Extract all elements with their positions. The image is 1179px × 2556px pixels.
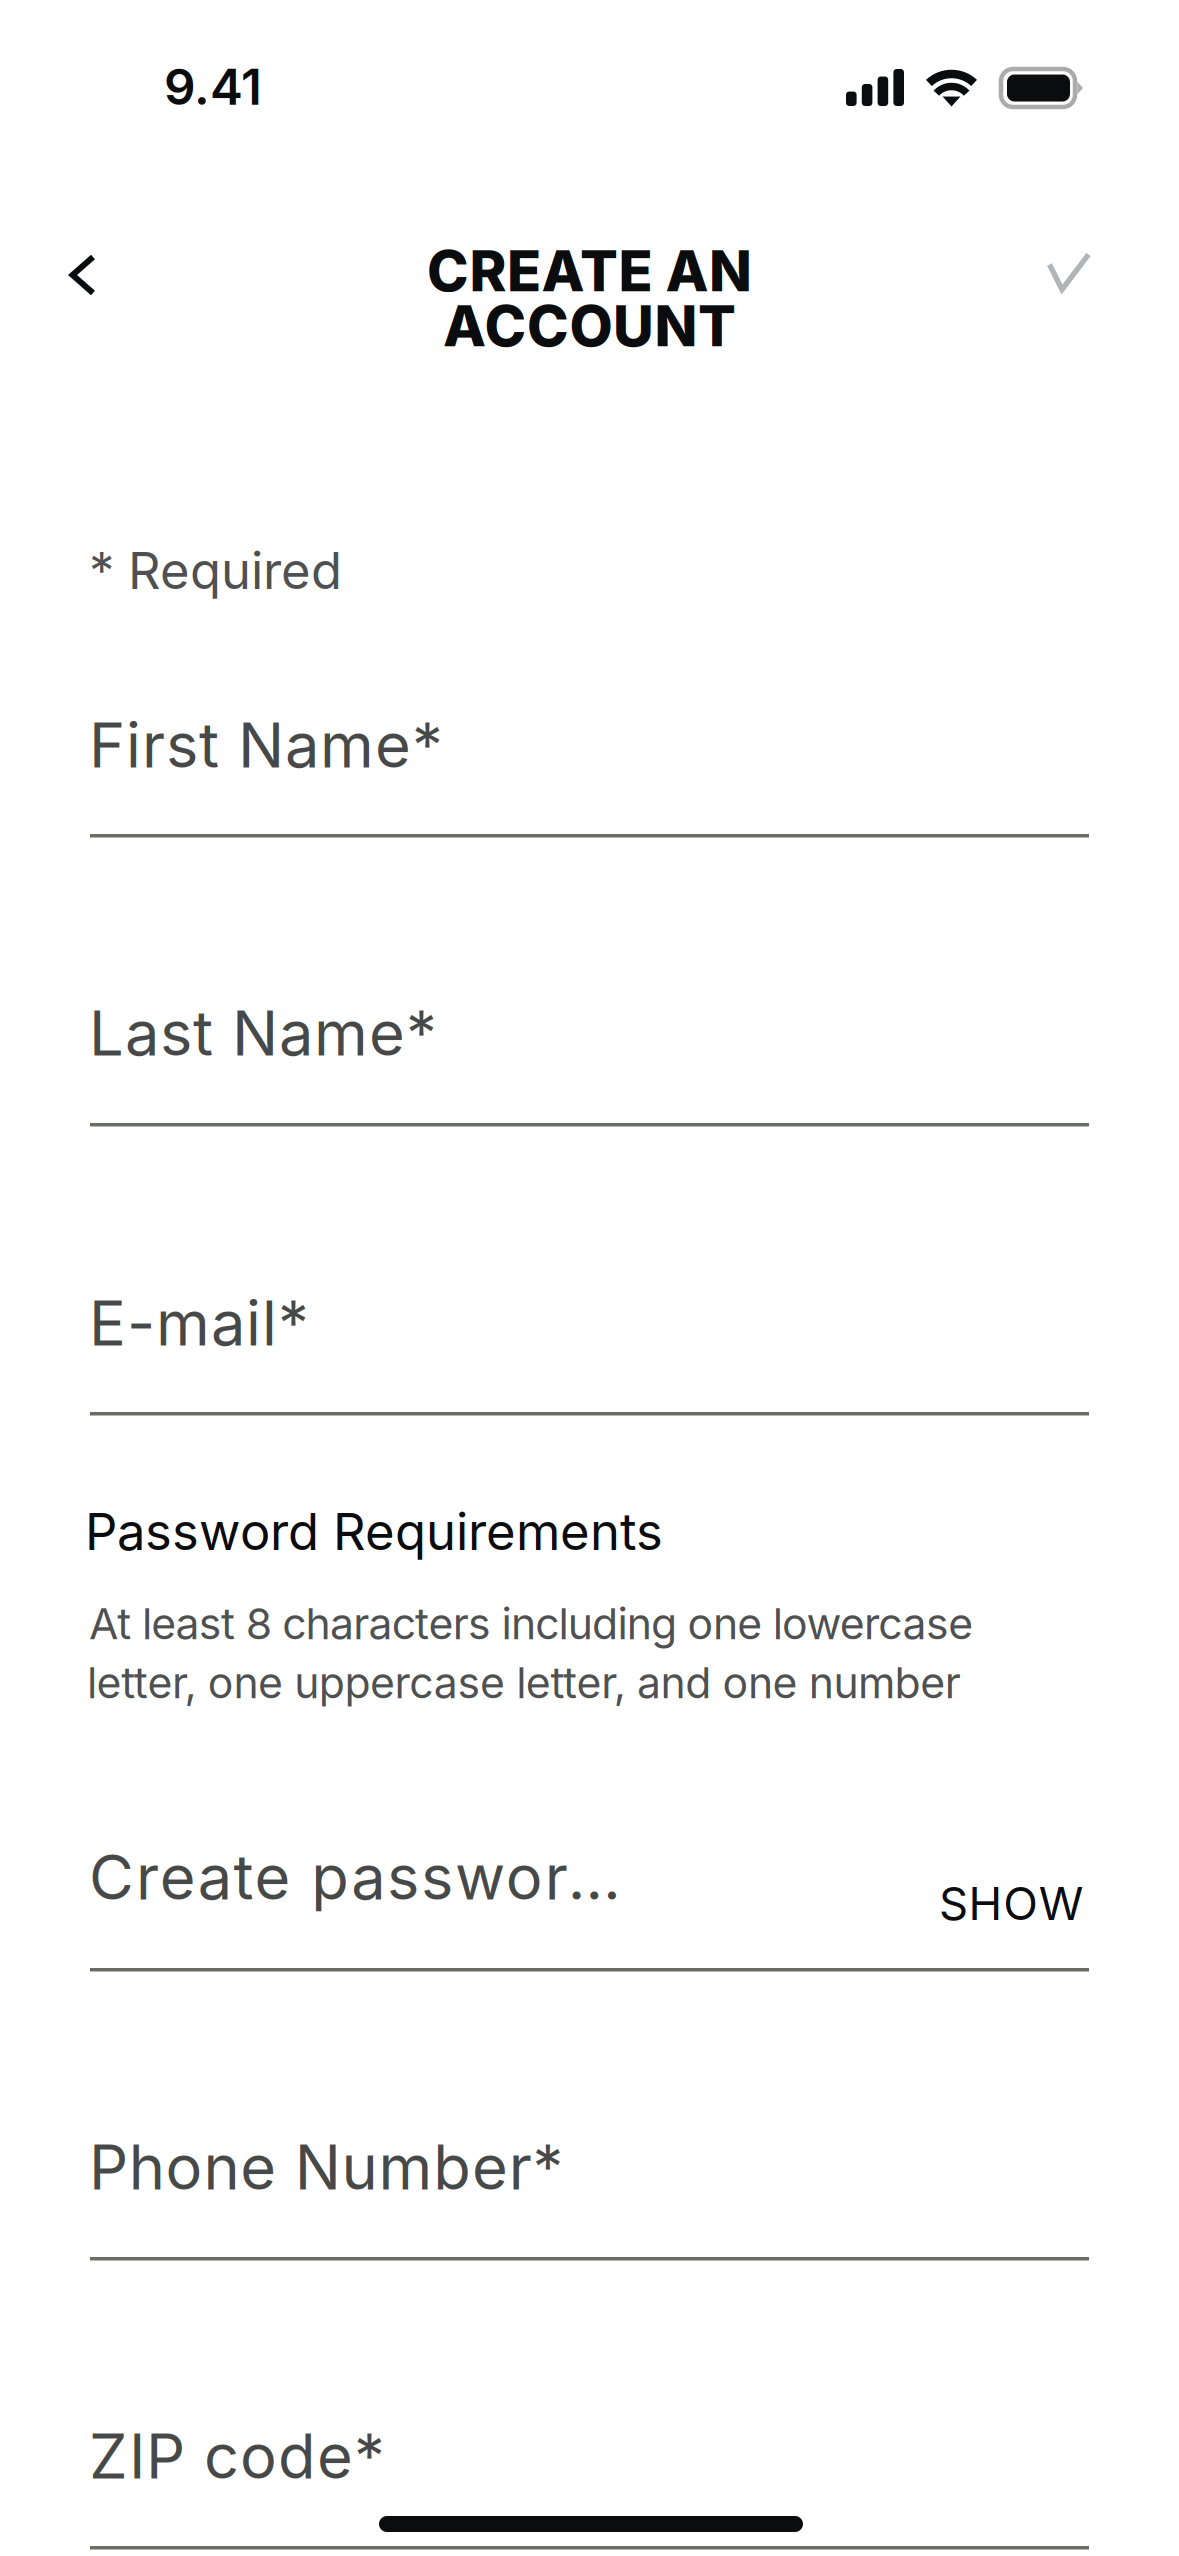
staticText: First Name* xyxy=(89,708,443,782)
staticText: Phone Number* xyxy=(89,2130,564,2204)
button[interactable]: SHOW xyxy=(919,1854,1104,1953)
staticText: SHOW xyxy=(939,1876,1084,1931)
staticText: At least 8 characters including one lowe… xyxy=(89,1598,973,1650)
staticText: ACCOUNT xyxy=(443,292,736,360)
staticText: * Required xyxy=(89,540,342,601)
button[interactable]: Done xyxy=(1014,217,1124,327)
staticText: Create password* xyxy=(89,1840,639,1914)
button[interactable]: Back xyxy=(28,220,138,330)
staticText: 9.41 xyxy=(164,57,262,117)
staticText: letter, one uppercase letter, and one nu… xyxy=(87,1657,961,1709)
staticText: CREATE AN xyxy=(427,237,752,305)
staticText: Last Name* xyxy=(89,996,437,1070)
staticText: ZIP code* xyxy=(89,2419,385,2493)
staticText: Password Requirements xyxy=(85,1501,663,1562)
staticText: E-mail* xyxy=(89,1286,309,1360)
